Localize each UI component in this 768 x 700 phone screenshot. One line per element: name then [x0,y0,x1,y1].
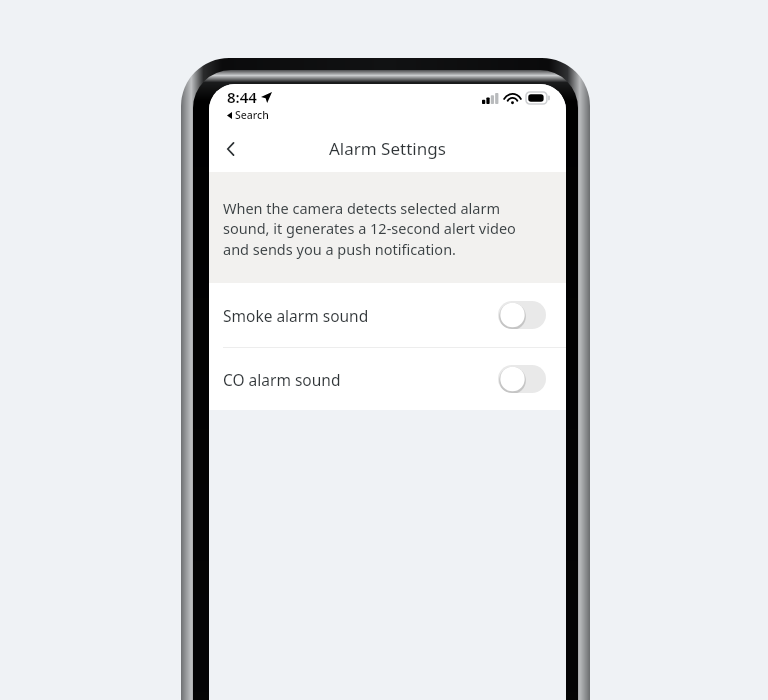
staticText: Search [235,108,269,122]
staticText: CO alarm sound [223,369,341,390]
staticText: Smoke alarm sound [223,305,369,326]
button[interactable]: Toggle, off [498,365,546,393]
button[interactable]: Toggle, off [498,301,546,329]
button[interactable]: CO alarm sound [209,348,566,410]
button[interactable]: Back [209,127,253,171]
staticText: When the camera detects selected alarm s… [223,198,544,260]
staticText: Alarm Settings [329,137,446,160]
staticText: 8:44 [227,87,257,107]
button[interactable]: Smoke alarm sound [209,283,566,347]
